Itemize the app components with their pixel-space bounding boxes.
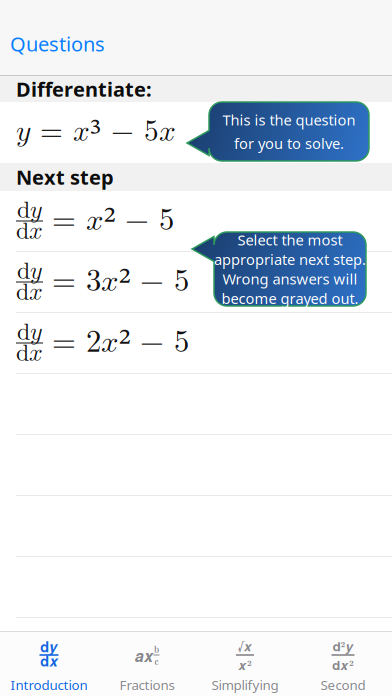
staticText: Next step <box>16 164 114 190</box>
staticText: Simplifying <box>211 676 278 694</box>
staticText: c <box>154 654 158 668</box>
button[interactable]: 𝐝²𝒚 <box>294 632 392 696</box>
button[interactable]: 𝒂𝒙 <box>98 632 196 696</box>
button[interactable]: 𝐝𝒚 <box>0 632 98 696</box>
staticText: 𝒂𝒙 <box>134 649 153 665</box>
staticText: = 𝑥² − 5 <box>52 205 174 237</box>
staticText: Differentiate: <box>16 76 152 102</box>
staticText: d𝑦 <box>17 320 42 344</box>
staticText: for you to solve. <box>234 133 344 153</box>
button[interactable]: d𝑦 <box>0 191 392 252</box>
staticText: Fractions <box>119 676 174 694</box>
staticText: Questions <box>10 30 105 57</box>
staticText: 𝒙² <box>238 655 252 674</box>
button[interactable]: d𝑦 <box>0 252 392 313</box>
staticText: = 3𝑥² − 5 <box>52 266 189 298</box>
staticText: become grayed out. <box>221 288 358 308</box>
button[interactable]: Questions <box>0 25 117 62</box>
staticText: Wrong answers will <box>222 269 357 288</box>
staticText: 𝐝𝒙² <box>332 655 354 674</box>
staticText: d𝑦 <box>17 259 42 283</box>
staticText: d𝑥 <box>16 219 43 243</box>
staticText: appropriate next step. <box>214 249 366 269</box>
staticText: √𝒙 <box>237 636 252 655</box>
staticText: d𝑦 <box>17 198 42 222</box>
staticText: Introduction <box>10 676 87 694</box>
staticText: 𝐝²𝒚 <box>332 636 353 655</box>
staticText: d𝑥 <box>16 280 43 304</box>
staticText: d𝑥 <box>16 341 43 365</box>
button[interactable]: d𝑦 <box>0 313 392 374</box>
staticText: = 2𝑥² − 5 <box>52 327 189 359</box>
staticText: 𝐝𝒚 <box>40 640 58 655</box>
staticText: Select the most <box>237 230 342 249</box>
staticText: 𝑦 = 𝑥³ − 5𝑥 <box>16 117 176 148</box>
staticText: Second <box>320 676 365 694</box>
staticText: 𝐝𝒙 <box>40 655 58 669</box>
button[interactable]: √𝒙 <box>196 632 294 696</box>
staticText: b <box>154 642 159 655</box>
staticText: This is the question <box>222 110 355 129</box>
